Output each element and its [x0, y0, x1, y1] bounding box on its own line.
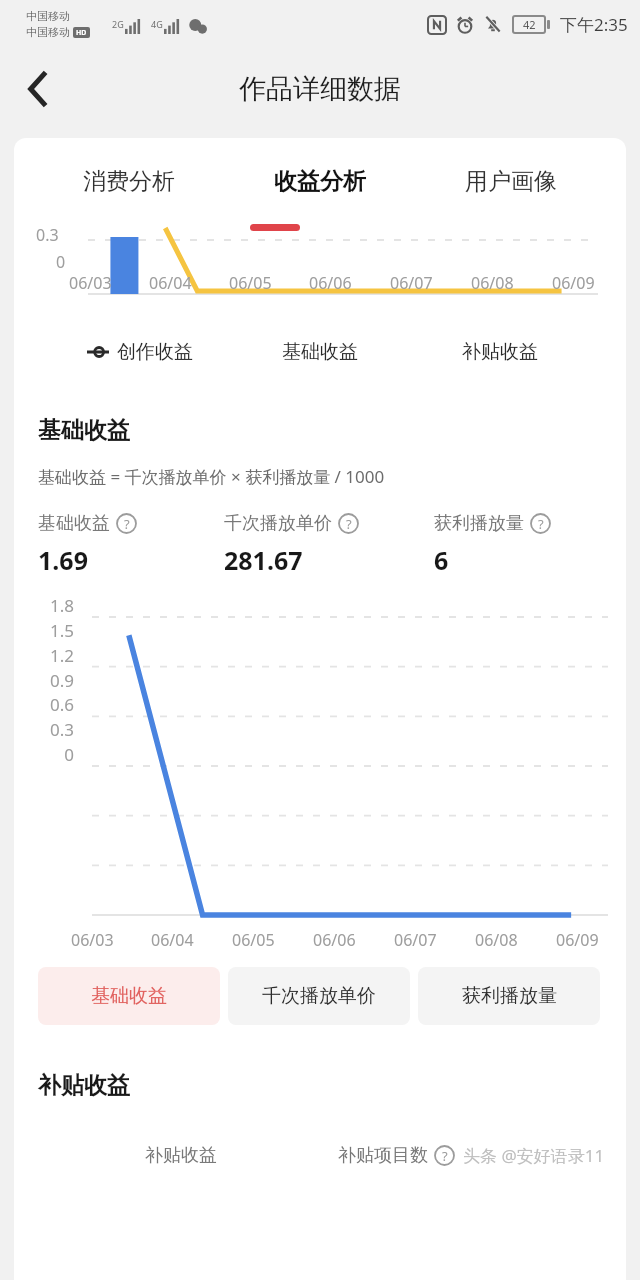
- staticText: 基础收益: [38, 512, 110, 535]
- staticText: 06/03: [71, 929, 114, 951]
- staticText: 0: [24, 743, 74, 766]
- button[interactable]: 创作收益: [50, 340, 230, 364]
- staticText: 补贴收益: [462, 340, 538, 364]
- staticText: 06/08: [475, 929, 518, 951]
- staticText: 补贴收益: [145, 1144, 217, 1167]
- staticText: 基础收益: [91, 984, 167, 1008]
- staticText: 4G: [151, 18, 163, 30]
- button[interactable]: 补贴收益: [410, 340, 590, 364]
- staticText: 收益分析: [274, 167, 366, 196]
- button[interactable]: 千次播放单价: [228, 967, 410, 1025]
- staticText: 基础收益: [282, 340, 358, 364]
- button[interactable]: 基础收益 说明: [116, 513, 137, 534]
- staticText: 0.3: [24, 718, 74, 741]
- staticText: 06/04: [149, 272, 192, 294]
- staticText: 06/06: [313, 929, 356, 951]
- staticText: 0.6: [24, 693, 74, 716]
- staticText: 42: [523, 17, 536, 32]
- staticText: 06/03: [69, 272, 112, 294]
- staticText: 获利播放量: [434, 512, 524, 535]
- staticText: 补贴项目数: [338, 1144, 428, 1167]
- button[interactable]: 返回: [12, 62, 66, 116]
- staticText: 中国移动: [26, 9, 70, 23]
- staticText: 0.3: [36, 224, 59, 246]
- staticText: 06/09: [556, 929, 599, 951]
- staticText: 06/09: [552, 272, 595, 294]
- staticText: 0.9: [24, 669, 74, 692]
- staticText: 1.69: [38, 543, 88, 577]
- staticText: 基础收益: [38, 416, 130, 445]
- staticText: 06/08: [471, 272, 514, 294]
- staticText: 6: [434, 543, 449, 577]
- staticText: 作品详细数据: [239, 72, 401, 106]
- staticText: 下午2:35: [560, 13, 628, 36]
- staticText: 千次播放单价: [224, 512, 332, 535]
- button[interactable]: 基础收益: [230, 340, 410, 364]
- staticText: ?: [346, 515, 352, 533]
- staticText: 06/07: [390, 272, 433, 294]
- staticText: 06/04: [151, 929, 194, 951]
- staticText: 06/07: [394, 929, 437, 951]
- button[interactable]: 消费分析: [34, 138, 224, 224]
- staticText: 06/06: [309, 272, 352, 294]
- button[interactable]: 千次播放单价 说明: [338, 513, 359, 534]
- button[interactable]: 获利播放量: [418, 967, 600, 1025]
- staticText: 0: [56, 251, 66, 273]
- button[interactable]: 基础收益: [38, 967, 220, 1025]
- staticText: 06/05: [229, 272, 272, 294]
- button[interactable]: 补贴项目数 说明: [434, 1145, 455, 1166]
- staticText: 基础收益 = 千次播放单价 × 获利播放量 / 1000: [38, 465, 385, 488]
- staticText: 补贴收益: [38, 1071, 130, 1100]
- button[interactable]: 收益分析: [224, 138, 415, 224]
- staticText: 1.5: [24, 619, 74, 642]
- button[interactable]: 获利播放量 说明: [530, 513, 551, 534]
- staticText: 281.67: [224, 543, 303, 577]
- staticText: 千次播放单价: [262, 984, 376, 1008]
- staticText: 中国移动: [26, 25, 70, 39]
- staticText: ?: [442, 1147, 448, 1165]
- staticText: 用户画像: [465, 167, 557, 196]
- staticText: 头条 @安好语录11: [463, 1144, 605, 1167]
- staticText: 1.2: [24, 644, 74, 667]
- staticText: ?: [124, 515, 130, 533]
- staticText: 06/05: [232, 929, 275, 951]
- staticText: 创作收益: [117, 340, 193, 364]
- staticText: 消费分析: [83, 167, 175, 196]
- staticText: 获利播放量: [462, 984, 557, 1008]
- staticText: 1.8: [24, 594, 74, 617]
- staticText: ?: [538, 515, 544, 533]
- button[interactable]: 用户画像: [415, 138, 606, 224]
- staticText: 2G: [112, 18, 124, 30]
- staticText: HD: [76, 28, 87, 38]
